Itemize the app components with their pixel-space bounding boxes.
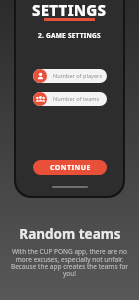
staticText: Random teams (19, 225, 121, 243)
staticText: Number of players (53, 72, 103, 80)
button[interactable]: CONTINUE (33, 160, 107, 175)
staticText: With the CUP PONG app, there are no more… (5, 247, 134, 278)
staticText: Number of teams (53, 95, 100, 103)
button[interactable]: Number of teams (33, 92, 107, 106)
staticText: 2. GAME SETTINGS (38, 31, 101, 40)
button[interactable]: Number of players (33, 69, 107, 83)
staticText: CONTINUE (50, 163, 91, 173)
staticText: SETTINGS (32, 0, 107, 20)
